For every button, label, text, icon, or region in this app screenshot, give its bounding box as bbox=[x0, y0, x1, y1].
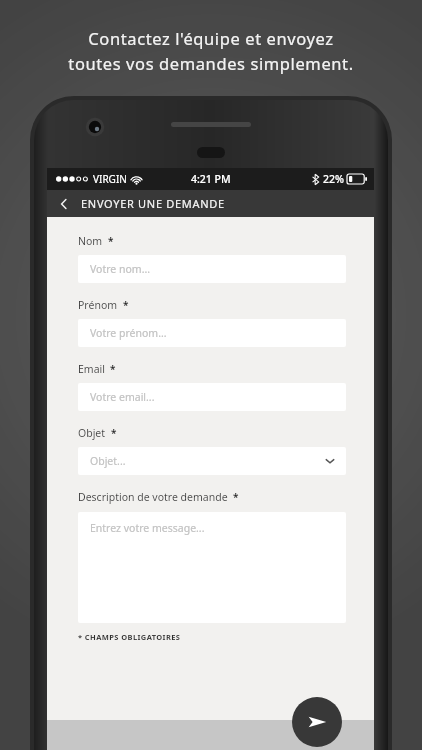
staticText: Objet bbox=[78, 426, 106, 440]
staticText: 4:21 PM bbox=[191, 172, 231, 186]
button[interactable]: Entrez votre message... bbox=[78, 512, 346, 623]
staticText: Votre nom... bbox=[90, 262, 151, 276]
button[interactable]: Votre nom... bbox=[78, 255, 346, 283]
staticText: * bbox=[110, 362, 116, 376]
staticText: Contactez l'équipe et envoyez bbox=[88, 27, 334, 49]
staticText: Email bbox=[78, 362, 105, 376]
staticText: ENVOYER UNE DEMANDE bbox=[81, 196, 225, 211]
staticText: Entrez votre message... bbox=[90, 521, 205, 535]
staticText: * bbox=[123, 298, 129, 312]
button[interactable]: Votre email... bbox=[78, 383, 346, 411]
staticText: Votre prénom... bbox=[90, 326, 167, 340]
staticText: * bbox=[108, 234, 114, 248]
staticText: Votre email... bbox=[90, 390, 155, 404]
staticText: Prénom bbox=[78, 298, 118, 312]
staticText: VIRGIN bbox=[93, 172, 127, 186]
button[interactable]: Envoyer bbox=[292, 697, 342, 747]
staticText: toutes vos demandes simplement. bbox=[68, 52, 354, 74]
staticText: 22% bbox=[323, 172, 344, 186]
staticText: Nom bbox=[78, 234, 103, 248]
staticText: Description de votre demande bbox=[78, 490, 228, 504]
staticText: Objet... bbox=[90, 454, 126, 468]
staticText: * bbox=[111, 426, 117, 440]
staticText: * bbox=[233, 490, 239, 504]
button[interactable]: Retour bbox=[47, 190, 81, 217]
staticText: * CHAMPS OBLIGATOIRES bbox=[78, 632, 181, 642]
button[interactable]: Votre prénom... bbox=[78, 319, 346, 347]
button[interactable]: Objet... bbox=[78, 447, 346, 475]
